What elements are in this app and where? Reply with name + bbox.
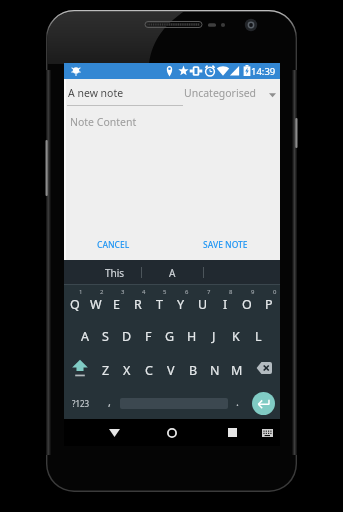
button[interactable]: 2: [85, 285, 106, 319]
staticText: M: [231, 362, 243, 379]
button[interactable]: [119, 387, 229, 419]
staticText: S: [102, 328, 109, 345]
button[interactable]: H: [181, 319, 203, 353]
staticText: J: [212, 328, 216, 345]
staticText: CANCEL: [97, 239, 130, 251]
button[interactable]: 8: [214, 285, 236, 319]
staticText: Q: [70, 296, 80, 313]
staticText: 8: [229, 288, 233, 296]
button[interactable]: N: [204, 353, 226, 387]
button[interactable]: 5: [148, 285, 170, 319]
button[interactable]: .: [229, 387, 246, 419]
button[interactable]: S: [95, 319, 116, 353]
button[interactable]: K: [225, 319, 247, 353]
button[interactable]: Back: [95, 419, 133, 446]
button[interactable]: Enter: [246, 387, 280, 419]
staticText: A new note: [68, 86, 124, 100]
button[interactable]: Home: [153, 419, 191, 446]
staticText: Z: [102, 362, 110, 379]
staticText: Uncategorised: [184, 86, 257, 100]
staticText: 7: [207, 288, 211, 296]
staticText: L: [255, 328, 262, 345]
staticText: U: [198, 296, 208, 313]
button[interactable]: F: [137, 319, 159, 353]
button[interactable]: G: [159, 319, 181, 353]
button[interactable]: C: [138, 353, 160, 387]
button[interactable]: 3: [106, 285, 127, 319]
button[interactable]: X: [116, 353, 138, 387]
button[interactable]: Recents: [213, 419, 251, 446]
staticText: Note Content: [70, 115, 137, 129]
staticText: G: [165, 328, 175, 345]
button[interactable]: ,: [100, 387, 119, 419]
staticText: SAVE NOTE: [203, 239, 248, 251]
staticText: V: [167, 362, 175, 379]
staticText: .: [236, 394, 239, 409]
button[interactable]: A: [74, 319, 95, 353]
button[interactable]: D: [116, 319, 137, 353]
staticText: K: [232, 328, 240, 345]
staticText: N: [210, 362, 220, 379]
staticText: W: [90, 296, 102, 313]
staticText: 0: [273, 288, 277, 296]
button[interactable]: 9: [236, 285, 258, 319]
staticText: 6: [185, 288, 189, 296]
button[interactable]: 4: [127, 285, 148, 319]
staticText: 2: [100, 288, 104, 296]
button[interactable]: B: [182, 353, 204, 387]
button[interactable]: CANCEL: [94, 236, 133, 254]
button[interactable]: Shift: [64, 353, 95, 387]
staticText: O: [242, 296, 252, 313]
staticText: C: [145, 362, 153, 379]
staticText: R: [134, 296, 142, 313]
button[interactable]: 6: [170, 285, 192, 319]
button[interactable]: M: [226, 353, 248, 387]
staticText: 14:39: [251, 65, 276, 78]
button[interactable]: V: [160, 353, 182, 387]
staticText: X: [123, 362, 131, 379]
button[interactable]: J: [203, 319, 225, 353]
button[interactable]: L: [247, 319, 269, 353]
staticText: F: [145, 328, 152, 345]
staticText: 3: [121, 288, 125, 296]
button[interactable]: 0: [258, 285, 280, 319]
button[interactable]: Backspace: [248, 353, 280, 387]
staticText: A: [81, 328, 89, 345]
button[interactable]: [204, 260, 280, 285]
staticText: H: [187, 328, 197, 345]
staticText: D: [122, 328, 132, 345]
staticText: I: [223, 296, 228, 313]
staticText: E: [113, 296, 120, 313]
staticText: ?123: [72, 398, 90, 409]
button[interactable]: SAVE NOTE: [200, 236, 251, 254]
staticText: P: [265, 296, 273, 313]
button[interactable]: ?123: [64, 387, 100, 419]
staticText: B: [189, 362, 198, 379]
staticText: ,: [108, 394, 111, 409]
button[interactable]: 1: [64, 285, 85, 319]
staticText: A: [169, 266, 176, 280]
button[interactable]: A: [142, 260, 203, 285]
staticText: 5: [163, 288, 167, 296]
button[interactable]: Z: [95, 353, 116, 387]
staticText: Y: [177, 296, 185, 313]
staticText: T: [156, 296, 163, 313]
staticText: 9: [251, 288, 255, 296]
staticText: 4: [142, 288, 146, 296]
button[interactable]: This: [64, 260, 141, 285]
button[interactable]: 7: [192, 285, 214, 319]
staticText: 1: [79, 288, 83, 296]
staticText: This: [105, 266, 125, 280]
button[interactable]: Switch keyboard: [250, 419, 284, 446]
